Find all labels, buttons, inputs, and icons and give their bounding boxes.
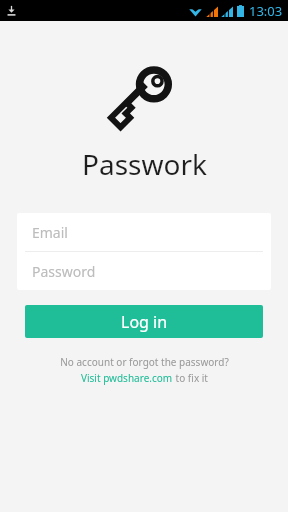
staticText: to fix it	[173, 371, 208, 385]
button[interactable]: Log in	[25, 305, 263, 338]
button[interactable]: Email	[17, 213, 271, 251]
button[interactable]: Password	[17, 252, 271, 290]
staticText: No account or forgot the password?	[60, 355, 229, 369]
other: Passwork key logo	[112, 63, 176, 133]
staticText: Visit pwdshare.com	[81, 371, 173, 385]
staticText: 13:03	[249, 2, 283, 20]
staticText: Email	[32, 223, 68, 242]
staticText: Log in	[121, 311, 168, 333]
staticText: Passwork	[82, 145, 207, 183]
button[interactable]: Visit pwdshare.com	[81, 371, 208, 385]
staticText: Password	[32, 262, 96, 281]
